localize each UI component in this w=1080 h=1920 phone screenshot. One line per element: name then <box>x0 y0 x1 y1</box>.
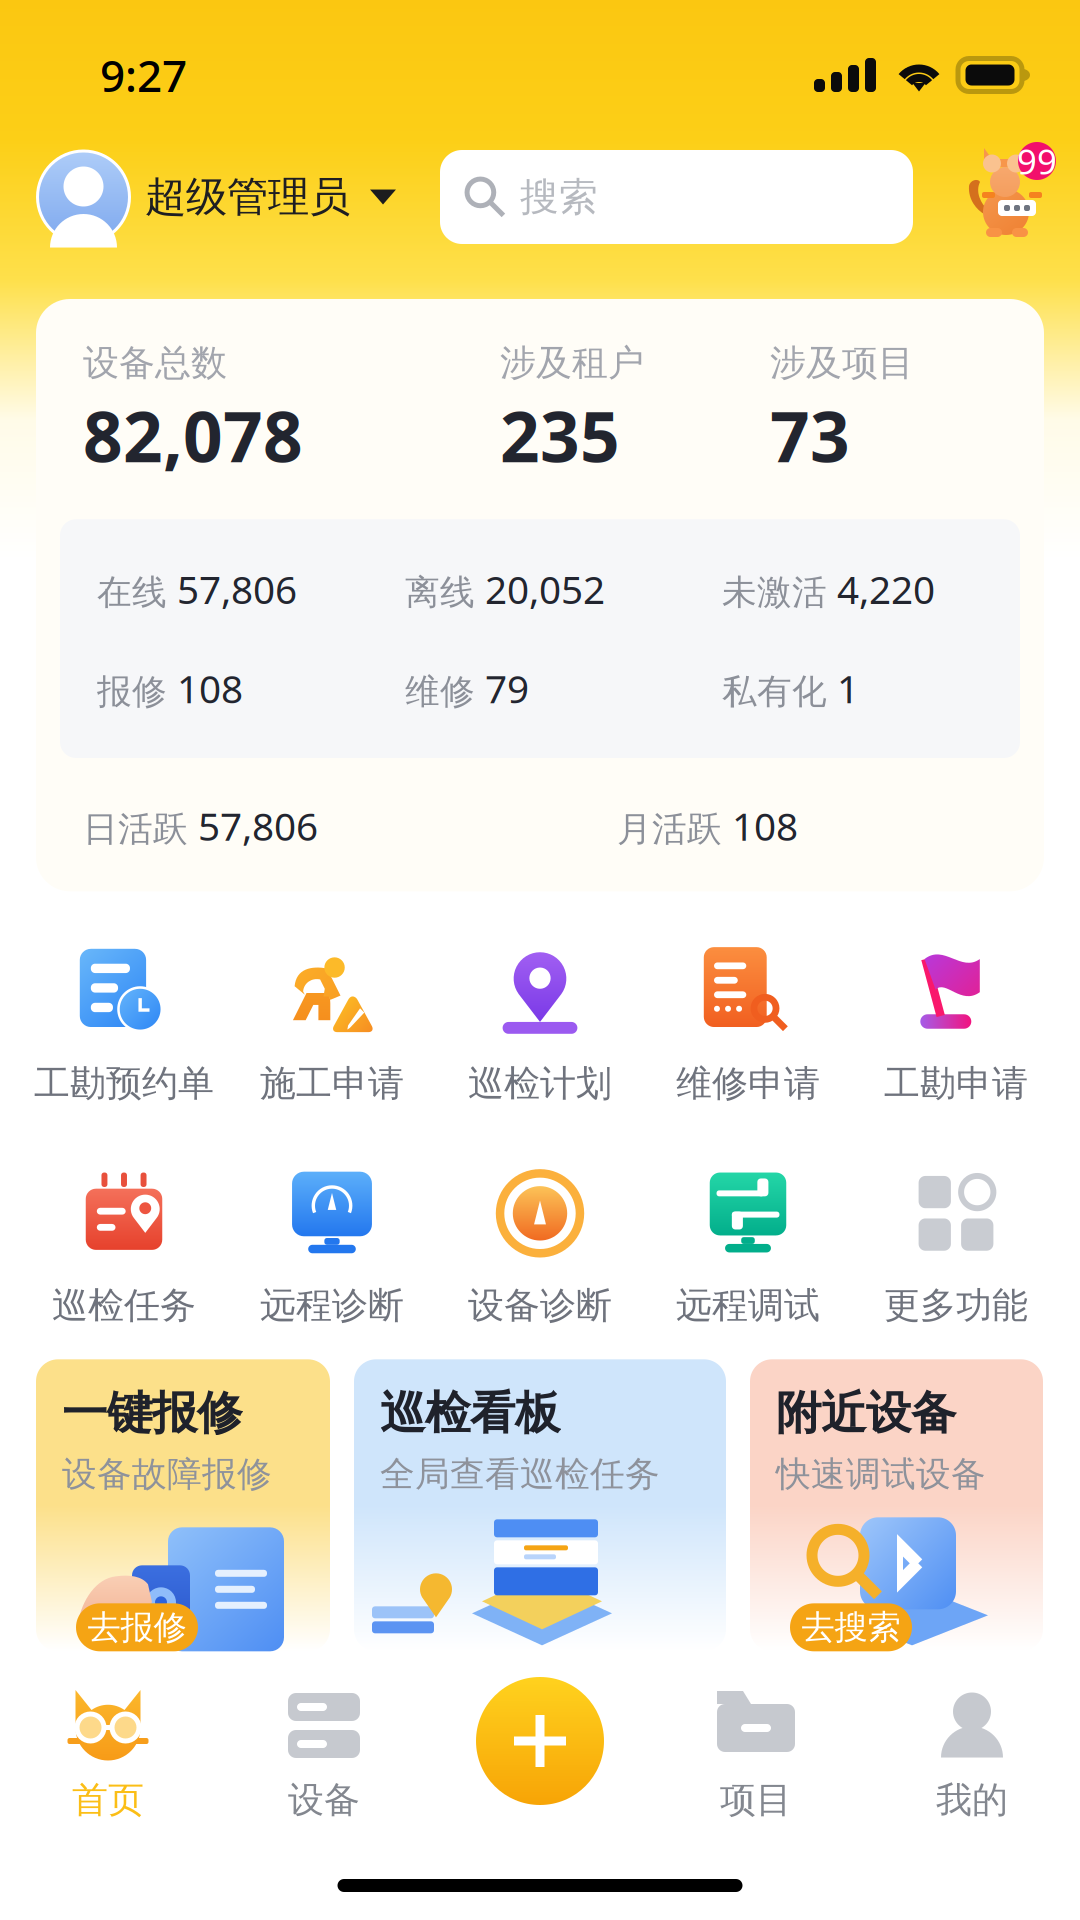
staticText: 108 <box>177 663 243 714</box>
staticText: 去报修 <box>87 1607 186 1648</box>
staticText: 更多功能 <box>884 1283 1028 1327</box>
staticText: 维修申请 <box>676 1061 820 1105</box>
button[interactable]: 去报修 <box>36 1359 330 1651</box>
button[interactable]: Add <box>476 1677 604 1805</box>
staticText: 一键报修 <box>62 1385 242 1441</box>
staticText: 报修 <box>97 670 167 713</box>
staticText: 9:27 <box>100 46 187 104</box>
staticText: 未激活 <box>722 571 827 614</box>
staticText: 远程诊断 <box>260 1283 404 1327</box>
staticText: 235 <box>500 389 620 481</box>
staticText: 99 <box>1017 138 1057 184</box>
button[interactable]: 工勘预约单 <box>20 933 228 1129</box>
staticText: 巡检计划 <box>468 1061 612 1105</box>
staticText: 月活跃 <box>617 808 722 850</box>
staticText: 79 <box>485 663 529 714</box>
button[interactable]: 首页 <box>0 1669 216 1835</box>
button[interactable]: 项目 <box>648 1669 864 1835</box>
staticText: 快速调试设备 <box>776 1453 986 1496</box>
staticText: 设备故障报修 <box>62 1453 272 1496</box>
button[interactable]: 设备 <box>216 1669 432 1835</box>
staticText: 涉及项目 <box>770 341 914 385</box>
button[interactable]: 工勘申请 <box>852 933 1060 1129</box>
button[interactable]: 搜索 <box>440 150 913 244</box>
button[interactable]: 超级管理员 <box>36 149 440 244</box>
staticText: 日活跃 <box>83 808 188 850</box>
button[interactable]: 远程调试 <box>644 1155 852 1351</box>
staticText: 维修 <box>405 670 475 713</box>
staticText: 巡检任务 <box>52 1283 196 1327</box>
button[interactable]: Messages <box>964 142 1056 252</box>
staticText: 离线 <box>405 571 475 614</box>
button[interactable]: 巡检任务 <box>20 1155 228 1351</box>
staticText: 首页 <box>72 1778 144 1822</box>
button[interactable]: 设备诊断 <box>436 1155 644 1351</box>
staticText: 57,806 <box>177 563 297 615</box>
staticText: 工勘预约单 <box>34 1061 214 1105</box>
button[interactable]: 更多功能 <box>852 1155 1060 1351</box>
staticText: 我的 <box>936 1778 1008 1822</box>
button[interactable]: 巡检计划 <box>436 933 644 1129</box>
staticText: 私有化 <box>722 670 827 713</box>
button[interactable]: 施工申请 <box>228 933 436 1129</box>
staticText: 项目 <box>720 1778 792 1822</box>
staticText: 工勘申请 <box>884 1061 1028 1105</box>
staticText: 远程调试 <box>676 1283 820 1327</box>
staticText: 巡检看板 <box>380 1385 560 1441</box>
staticText: 20,052 <box>485 563 605 615</box>
button[interactable]: 巡检看板 <box>354 1359 726 1651</box>
staticText: 设备 <box>288 1778 360 1822</box>
staticText: 设备诊断 <box>468 1283 612 1327</box>
staticText: 去搜索 <box>801 1607 900 1648</box>
staticText: 全局查看巡检任务 <box>380 1453 660 1496</box>
button[interactable]: 远程诊断 <box>228 1155 436 1351</box>
button[interactable]: 我的 <box>864 1669 1080 1835</box>
button[interactable]: 维修申请 <box>644 933 852 1129</box>
staticText: 57,806 <box>198 800 318 851</box>
staticText: 设备总数 <box>83 341 227 385</box>
button[interactable]: 去搜索 <box>750 1359 1043 1651</box>
staticText: 在线 <box>97 571 167 614</box>
staticText: 施工申请 <box>260 1061 404 1105</box>
staticText: 涉及租户 <box>500 341 644 385</box>
staticText: 超级管理员 <box>145 172 350 222</box>
staticText: 4,220 <box>837 563 935 615</box>
staticText: 1 <box>837 663 859 714</box>
staticText: 73 <box>770 389 850 481</box>
staticText: 82,078 <box>83 389 303 481</box>
staticText: 搜索 <box>520 173 598 221</box>
staticText: 附近设备 <box>776 1385 956 1441</box>
staticText: 108 <box>732 800 798 851</box>
